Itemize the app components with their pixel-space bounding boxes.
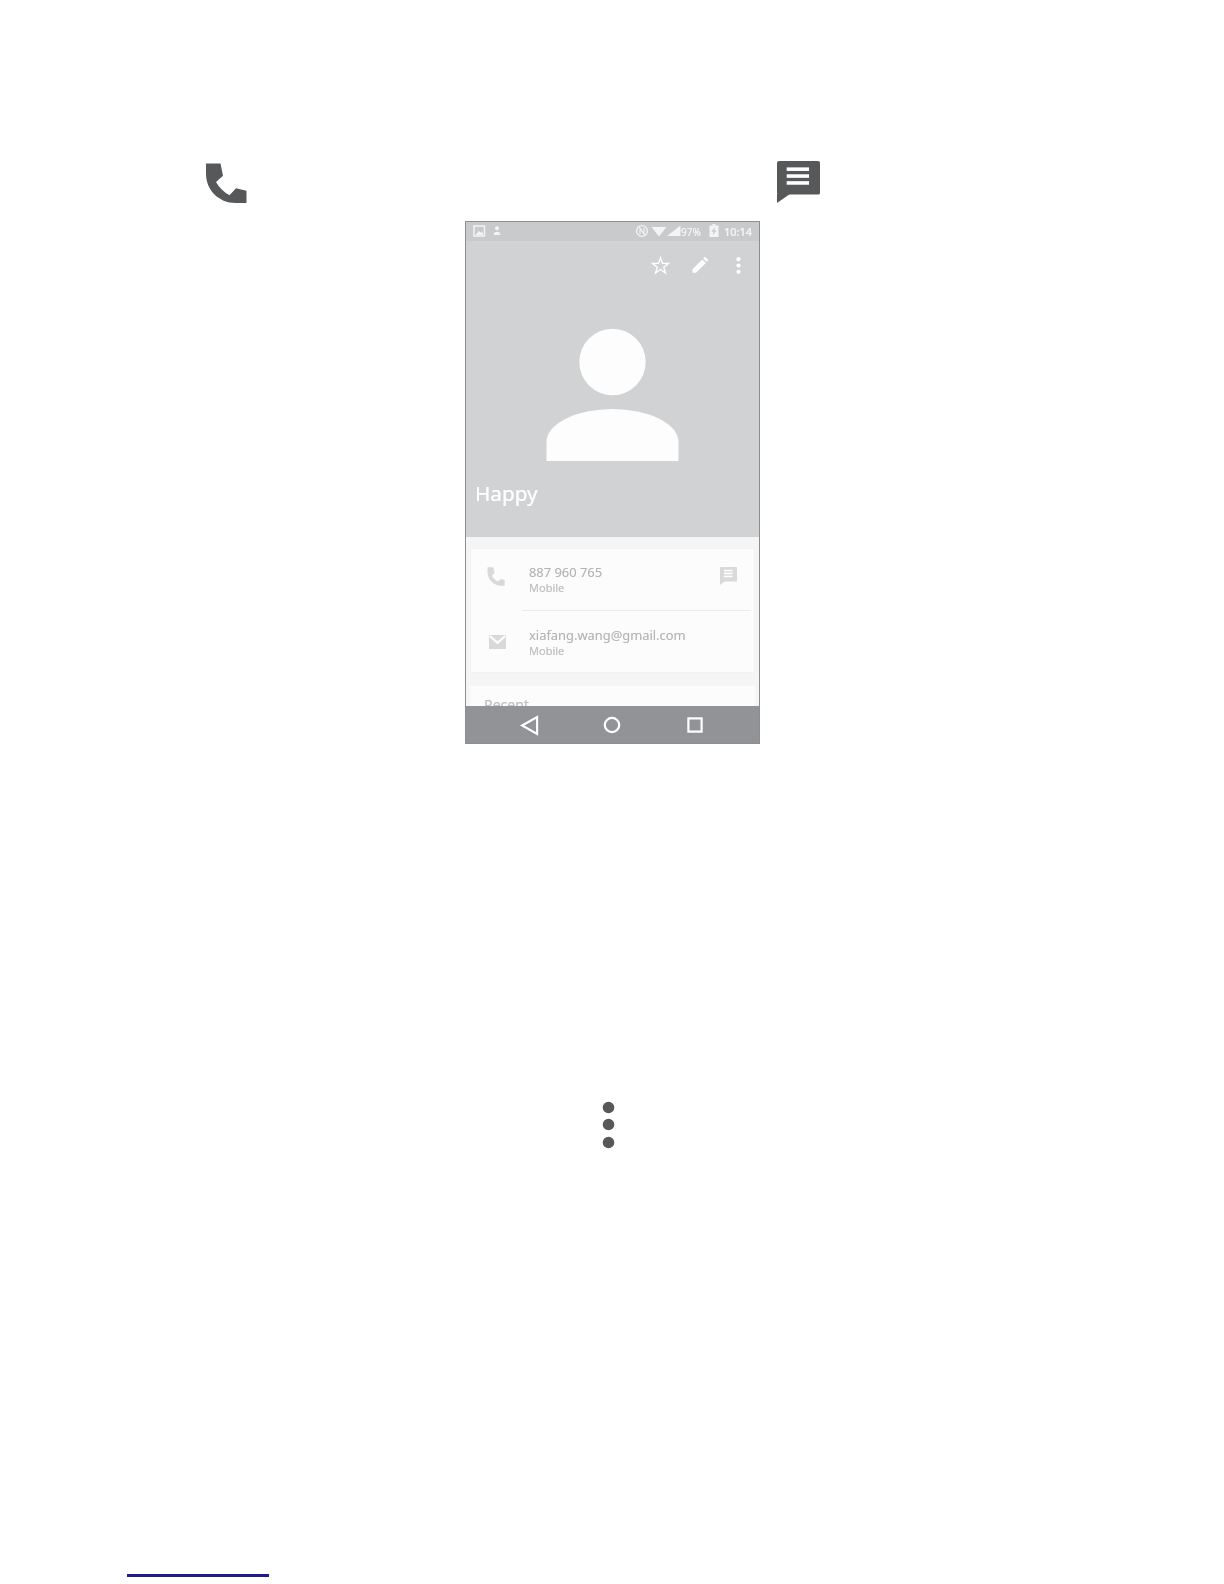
button[interactable]: More options — [598, 1096, 620, 1152]
button[interactable]: Back — [505, 706, 553, 744]
button[interactable]: xiafang.wang@gmail.com — [470, 611, 755, 673]
button[interactable]: Message — [777, 161, 820, 203]
button[interactable]: Edit contact — [683, 248, 717, 282]
button[interactable]: Home — [588, 706, 636, 744]
staticText: 887 960 765 — [529, 563, 603, 581]
button[interactable]: 887 960 765 — [470, 548, 755, 610]
staticText: xiafang.wang@gmail.com — [529, 626, 686, 644]
button[interactable]: Recent apps — [671, 706, 719, 744]
button[interactable]: Favourite — [643, 248, 677, 282]
button[interactable]: Call — [205, 163, 247, 203]
staticText: 10:14 — [724, 224, 753, 239]
button[interactable]: More options — [721, 248, 755, 282]
staticText: Recent — [484, 695, 529, 714]
button[interactable]: Send message — [707, 548, 755, 610]
staticText: Mobile — [529, 580, 565, 595]
staticText: 97% — [681, 225, 701, 239]
staticText: Mobile — [529, 643, 565, 658]
staticText: Happy — [475, 479, 538, 507]
